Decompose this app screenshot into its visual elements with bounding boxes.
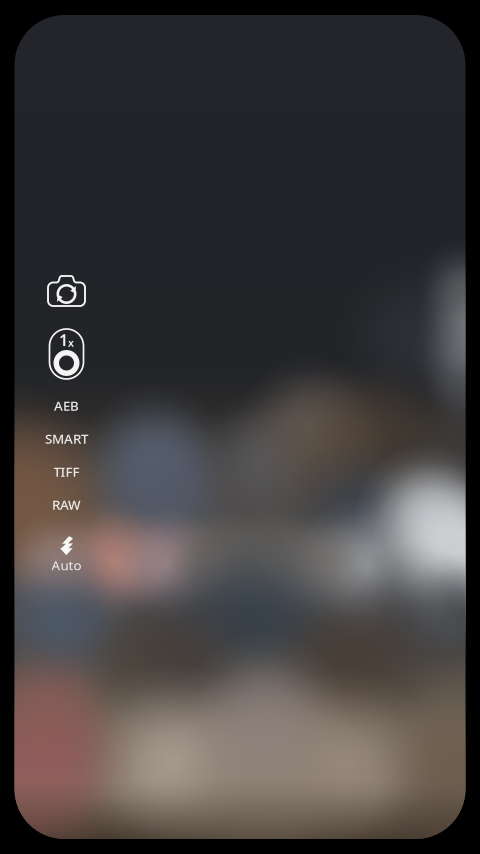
button[interactable]: RAW bbox=[18, 488, 114, 521]
staticText: TIFF bbox=[53, 463, 79, 480]
button[interactable]: Zoom 1x bbox=[38, 329, 94, 379]
button[interactable]: AEB bbox=[18, 389, 114, 422]
staticText: AEB bbox=[54, 397, 79, 414]
button[interactable]: SMART bbox=[18, 422, 114, 455]
staticText: 1 bbox=[59, 329, 68, 351]
staticText: x bbox=[68, 335, 74, 350]
staticText: SMART bbox=[45, 430, 88, 447]
button[interactable]: TIFF bbox=[18, 455, 114, 488]
button[interactable]: Switch camera bbox=[38, 274, 94, 308]
staticText: RAW bbox=[52, 496, 81, 513]
button[interactable]: Auto bbox=[31, 533, 101, 577]
staticText: Auto bbox=[51, 556, 81, 574]
